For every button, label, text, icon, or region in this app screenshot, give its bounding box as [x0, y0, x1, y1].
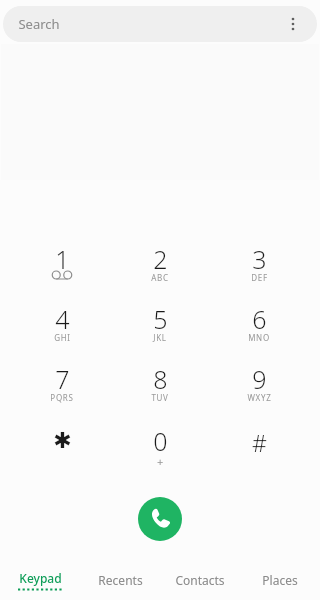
staticText: Search [18, 15, 60, 33]
staticText: Contacts [175, 572, 225, 588]
staticText: 1 [55, 242, 70, 276]
button[interactable]: 8 [114, 358, 206, 414]
button[interactable]: 4 [16, 298, 108, 354]
button[interactable]: ✱ [16, 420, 108, 476]
staticText: + [157, 454, 164, 469]
button[interactable]: 2 [114, 238, 206, 294]
button[interactable]: 7 [16, 358, 108, 414]
button[interactable]: Keypad [0, 560, 80, 600]
staticText: Keypad [19, 570, 62, 586]
staticText: MNO [248, 332, 270, 343]
staticText: 6 [252, 302, 267, 336]
staticText: ABC [151, 272, 169, 283]
button[interactable]: Places [240, 560, 320, 600]
staticText: TUV [151, 392, 169, 403]
button[interactable]: 1 [16, 238, 108, 294]
button[interactable]: 5 [114, 298, 206, 354]
staticText: 9 [252, 362, 267, 396]
staticText: 2 [153, 242, 168, 276]
button[interactable]: 6 [213, 298, 305, 354]
staticText: GHI [54, 332, 71, 343]
button[interactable]: Contacts [160, 560, 240, 600]
staticText: Recents [98, 572, 143, 588]
button[interactable]: Call [138, 497, 182, 541]
staticText: PQRS [50, 392, 74, 403]
staticText: # [252, 427, 267, 458]
staticText: ✱ [53, 428, 72, 454]
button[interactable]: More options [281, 12, 305, 36]
staticText: DEF [251, 272, 268, 283]
staticText: Places [262, 572, 298, 588]
staticText: 4 [55, 302, 70, 336]
staticText: 5 [153, 302, 168, 336]
staticText: WXYZ [247, 392, 272, 403]
staticText: 7 [55, 362, 70, 396]
button[interactable]: # [213, 420, 305, 476]
button[interactable]: 3 [213, 238, 305, 294]
button[interactable]: Recents [80, 560, 160, 600]
staticText: 0 [153, 424, 168, 458]
button[interactable]: Search [3, 6, 317, 42]
button[interactable]: 9 [213, 358, 305, 414]
staticText: 8 [153, 362, 168, 396]
staticText: JKL [153, 332, 167, 343]
staticText: 3 [252, 242, 267, 276]
button[interactable]: 0 [114, 420, 206, 476]
